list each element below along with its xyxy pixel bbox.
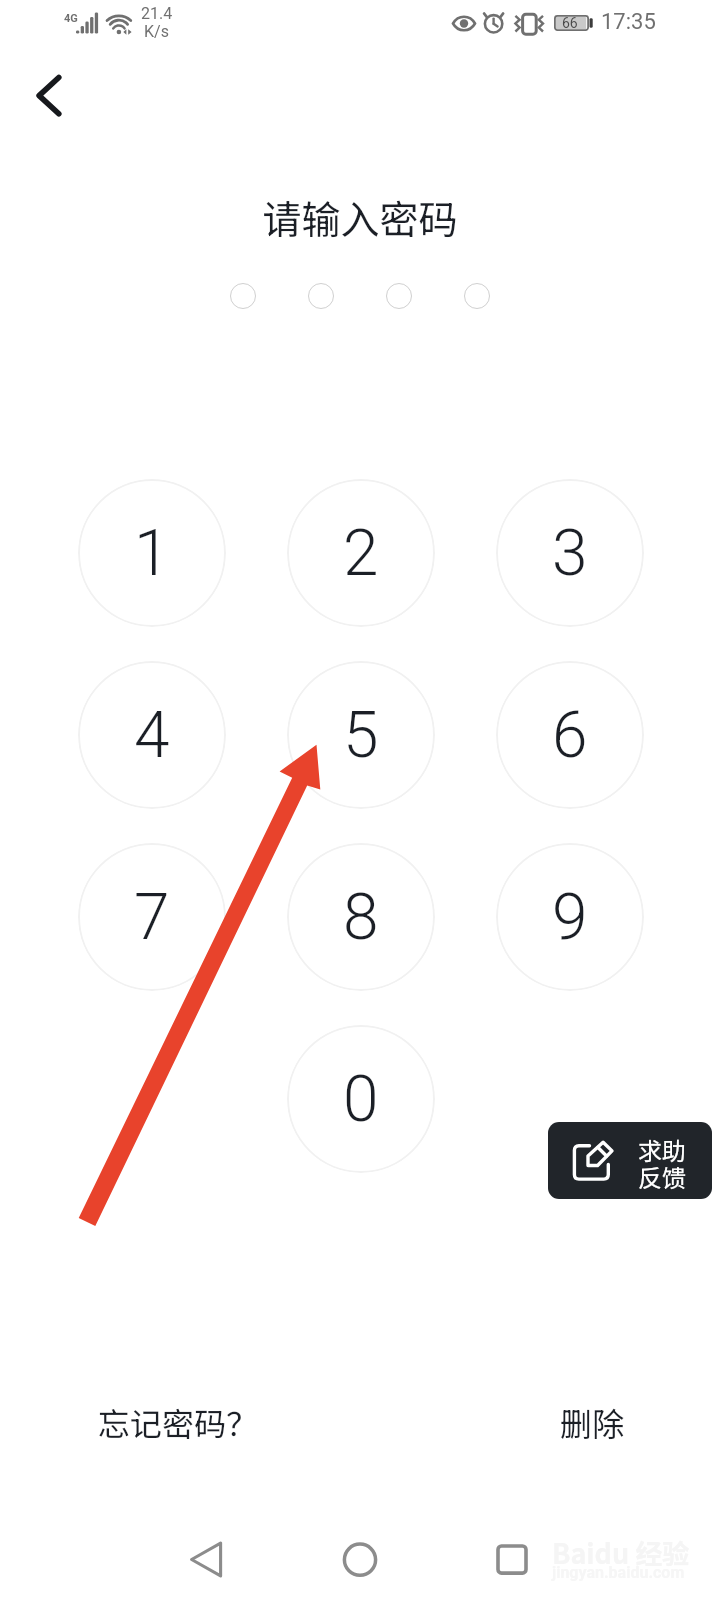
button[interactable]: Recents [482, 1528, 542, 1588]
button[interactable]: 0 [287, 1025, 435, 1173]
staticText: 2 [343, 516, 379, 591]
button[interactable]: 5 [287, 661, 435, 809]
staticText: 17:35 [601, 9, 656, 35]
button[interactable]: 2 [287, 479, 435, 627]
staticText: 求助 反馈 [638, 1132, 686, 1194]
staticText: 4 [134, 698, 170, 773]
button[interactable]: 1 [78, 479, 226, 627]
staticText: 7 [134, 880, 170, 955]
staticText: Baidu 经验 [552, 1533, 690, 1572]
button[interactable]: 8 [287, 843, 435, 991]
button[interactable]: Back [16, 62, 84, 130]
staticText: 请输入密码 [262, 189, 458, 245]
button[interactable]: 求助 反馈 [548, 1122, 712, 1199]
staticText: jingyan.baidu.com [552, 1563, 685, 1582]
staticText: 21.4 [141, 4, 173, 23]
staticText: 8 [343, 880, 379, 955]
button[interactable]: 删除 [560, 1399, 625, 1445]
staticText: 0 [343, 1062, 379, 1137]
button[interactable]: Back [176, 1528, 236, 1588]
button[interactable]: 3 [496, 479, 644, 627]
staticText: 忘记密码？ [98, 1399, 259, 1445]
staticText: 5 [343, 698, 379, 773]
button[interactable]: 4 [78, 661, 226, 809]
staticText: 1 [134, 516, 170, 591]
staticText: K/s [144, 22, 169, 41]
staticText: 9 [552, 880, 588, 955]
button[interactable]: 9 [496, 843, 644, 991]
staticText: 3 [552, 516, 588, 591]
staticText: 4G [64, 12, 78, 25]
button[interactable]: 6 [496, 661, 644, 809]
button[interactable]: 7 [78, 843, 226, 991]
button[interactable]: Home [330, 1528, 390, 1588]
staticText: 删除 [560, 1399, 625, 1445]
staticText: 66 [562, 15, 578, 31]
button[interactable]: 忘记密码？ [98, 1399, 259, 1445]
staticText: 6 [552, 698, 588, 773]
